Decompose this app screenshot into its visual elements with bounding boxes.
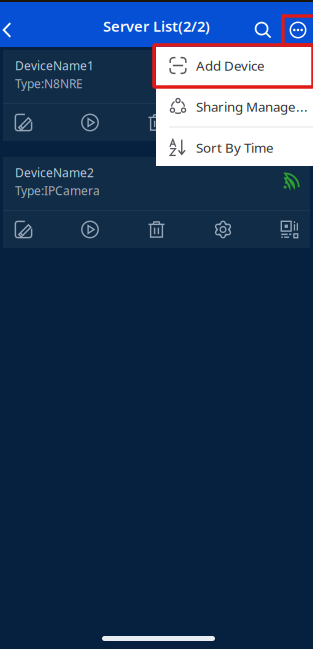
button[interactable]: Edit	[3, 104, 44, 141]
button[interactable]: Sort By Time	[156, 127, 313, 167]
staticText: Add Device	[196, 57, 265, 74]
button[interactable]: Delete	[136, 104, 177, 141]
button[interactable]: Add Device	[156, 45, 313, 85]
staticText: DeviceName2	[15, 164, 94, 180]
staticText: DeviceName1	[15, 57, 94, 73]
button[interactable]: Sharing Manage...	[156, 86, 313, 126]
button[interactable]: More options	[281, 11, 313, 49]
button[interactable]: Back	[0, 11, 22, 49]
button[interactable]: Play	[69, 104, 110, 141]
button[interactable]: Settings	[202, 104, 243, 141]
staticText: Type:N8NRE	[15, 75, 83, 91]
staticText: Type:IPCamera	[15, 182, 100, 198]
button[interactable]: Delete	[136, 211, 177, 248]
staticText: Sort By Time	[196, 139, 274, 156]
button[interactable]: Share QR Code	[269, 104, 310, 141]
staticText: Sharing Manage...	[196, 98, 308, 115]
staticText: Server List(2/2)	[103, 16, 210, 36]
button[interactable]: Play	[69, 211, 110, 248]
button[interactable]: Share QR Code	[269, 211, 310, 248]
button[interactable]: Search	[246, 11, 280, 49]
button[interactable]: Settings	[202, 211, 243, 248]
button[interactable]: Edit	[3, 211, 44, 248]
